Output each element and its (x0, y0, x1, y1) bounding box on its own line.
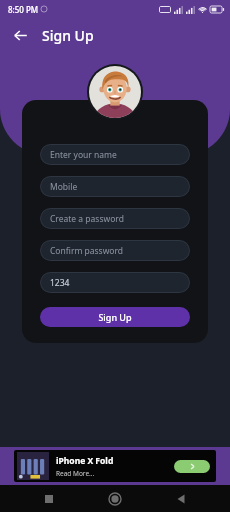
staticText: 8:50 PM (8, 4, 39, 15)
staticText: Sign Up (98, 311, 132, 323)
button[interactable]: Enter your name (40, 144, 190, 165)
button[interactable]: Home (98, 485, 132, 512)
button[interactable]: Back (164, 485, 198, 512)
button[interactable]: Create a password (40, 208, 190, 229)
staticText: Confirm password (50, 245, 124, 257)
staticText: Read More... (56, 469, 95, 478)
staticText: Sign Up (42, 26, 94, 45)
button[interactable]: Open ad (174, 460, 210, 473)
staticText: Enter your name (50, 149, 117, 161)
button[interactable]: Recent apps (32, 485, 66, 512)
staticText: 1234 (50, 277, 70, 289)
staticText: Mobile (50, 181, 78, 193)
button[interactable]: Mobile (40, 176, 190, 197)
button[interactable]: Back (6, 21, 34, 49)
staticText: Create a password (50, 213, 124, 225)
button[interactable]: 1234 (40, 272, 190, 293)
button[interactable]: iPhone X Fold (14, 450, 216, 482)
button[interactable]: Confirm password (40, 240, 190, 261)
button[interactable]: Sign Up (40, 307, 190, 327)
staticText: iPhone X Fold (56, 455, 114, 467)
